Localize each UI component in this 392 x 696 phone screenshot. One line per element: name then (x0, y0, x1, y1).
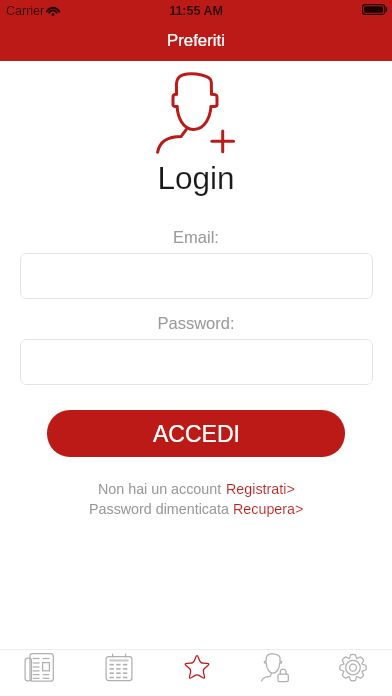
staticText: Login (0, 160, 392, 195)
staticText: Preferiti (0, 31, 392, 50)
button[interactable]: Calendar (79, 649, 158, 696)
button[interactable]: Recupera> (233, 501, 304, 517)
button[interactable]: Settings (314, 649, 392, 696)
staticText: Registrati> (226, 481, 295, 497)
staticText: Password dimenticata (89, 501, 233, 517)
button[interactable]: News (0, 649, 79, 696)
button[interactable]: ACCEDI (47, 410, 345, 457)
button[interactable]: Account (236, 649, 314, 696)
staticText: ACCEDI (153, 421, 240, 447)
staticText: Email: (0, 228, 392, 246)
button[interactable]: Registrati> (226, 481, 295, 497)
staticText: Non hai un account (98, 481, 226, 497)
staticText: Recupera> (233, 501, 304, 517)
button[interactable]: Favorites (158, 649, 236, 696)
staticText: Carrier (6, 4, 45, 18)
button[interactable] (20, 339, 373, 385)
staticText: 11:55 AM (0, 4, 392, 18)
button[interactable] (20, 253, 373, 299)
staticText: Password: (0, 314, 392, 332)
